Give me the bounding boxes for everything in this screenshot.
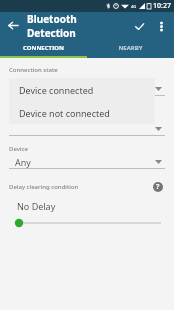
button[interactable]: Save (127, 14, 151, 38)
button[interactable]: Any (9, 155, 165, 169)
staticText: Delay clearing condition (9, 183, 151, 191)
staticText: 4G (131, 4, 137, 9)
button[interactable]: CONNECTION (0, 39, 87, 56)
button[interactable] (9, 82, 165, 96)
staticText: CONNECTION (23, 44, 64, 52)
staticText: Device not connected (19, 107, 110, 119)
staticText: 10:27 (153, 1, 171, 11)
staticText: ? (156, 182, 160, 192)
button[interactable] (9, 122, 165, 136)
staticText: NEARBY (118, 44, 143, 52)
button[interactable] (9, 217, 165, 229)
staticText: Connection state (9, 66, 58, 74)
button[interactable]: More options (151, 16, 171, 36)
button[interactable]: NEARBY (87, 39, 174, 56)
button[interactable]: Device not connected (9, 101, 155, 124)
staticText: Bluetooth Detection (27, 12, 127, 39)
button[interactable]: Device connected (9, 78, 155, 101)
staticText: Device (9, 145, 28, 153)
staticText: Device connected (19, 84, 94, 96)
button[interactable]: Back (0, 12, 27, 39)
button[interactable]: Help (151, 180, 165, 194)
staticText: No Delay (17, 200, 56, 212)
staticText: Any (15, 156, 155, 168)
